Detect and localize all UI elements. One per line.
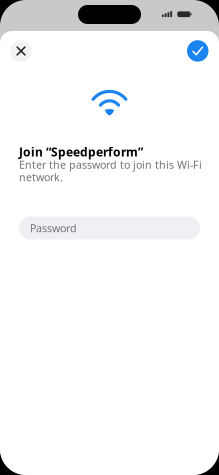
staticText: Enter the password to join this Wi-Fi bbox=[19, 157, 202, 172]
staticText: network. bbox=[19, 170, 63, 184]
button[interactable]: Password bbox=[19, 216, 200, 239]
button[interactable]: Close bbox=[10, 40, 32, 62]
button[interactable]: Join bbox=[187, 40, 208, 62]
staticText: Password bbox=[30, 221, 77, 235]
staticText: Join “Speedperform” bbox=[19, 144, 143, 160]
